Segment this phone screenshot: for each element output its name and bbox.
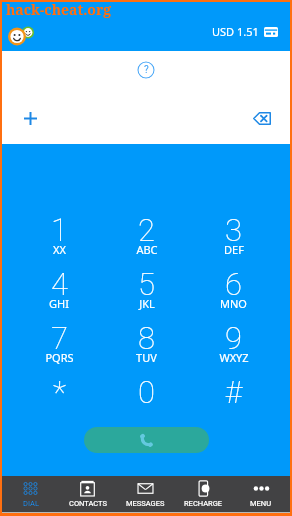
staticText: 2 bbox=[138, 212, 155, 248]
staticText: hack-cheat.org bbox=[6, 0, 112, 19]
staticText: 7 bbox=[51, 320, 68, 356]
button[interactable]: Add contact bbox=[17, 105, 43, 131]
button[interactable]: 3 bbox=[190, 212, 277, 264]
staticText: MENU bbox=[250, 499, 272, 508]
staticText: DIAL bbox=[23, 499, 39, 508]
staticText: MESSAGES bbox=[126, 499, 165, 508]
button[interactable]: DIAL bbox=[2, 476, 59, 512]
staticText: * bbox=[53, 374, 66, 410]
button[interactable]: # bbox=[190, 374, 277, 426]
staticText: DEF bbox=[224, 242, 244, 257]
button[interactable]: MENU bbox=[232, 476, 290, 512]
staticText: XX bbox=[53, 242, 66, 257]
staticText: CONTACTS bbox=[69, 499, 107, 508]
staticText: 0 bbox=[138, 374, 155, 410]
staticText: GHI bbox=[49, 296, 69, 311]
staticText: TUV bbox=[136, 350, 157, 365]
button[interactable]: Help bbox=[137, 61, 155, 79]
button[interactable]: 2 bbox=[103, 212, 190, 264]
button[interactable]: 6 bbox=[190, 266, 277, 318]
staticText: WXYZ bbox=[219, 350, 249, 365]
staticText: 6 bbox=[225, 266, 242, 302]
button[interactable]: Contacts avatars bbox=[4, 25, 42, 49]
staticText: # bbox=[225, 374, 242, 410]
staticText: RECHARGE bbox=[184, 499, 223, 508]
staticText: USD 1.51 bbox=[212, 24, 259, 39]
staticText: JKL bbox=[139, 296, 155, 311]
staticText: 3 bbox=[225, 212, 242, 248]
button[interactable]: RECHARGE bbox=[174, 476, 232, 512]
button[interactable]: 8 bbox=[103, 320, 190, 372]
button[interactable]: 4 bbox=[15, 266, 103, 318]
staticText: MNO bbox=[220, 296, 247, 311]
button[interactable]: MESSAGES bbox=[116, 476, 174, 512]
button[interactable]: 7 bbox=[15, 320, 103, 372]
button[interactable]: Backspace bbox=[248, 104, 276, 132]
staticText: ABC bbox=[136, 242, 158, 257]
staticText: ? bbox=[144, 64, 149, 76]
button[interactable]: 1 bbox=[15, 212, 103, 264]
button[interactable]: Call bbox=[84, 427, 209, 453]
staticText: 9 bbox=[225, 320, 242, 356]
staticText: 5 bbox=[138, 266, 155, 302]
button[interactable]: CONTACTS bbox=[59, 476, 116, 512]
button[interactable]: USD 1.51 bbox=[212, 24, 278, 39]
button[interactable]: * bbox=[15, 374, 103, 426]
staticText: 8 bbox=[138, 320, 155, 356]
button[interactable]: 9 bbox=[190, 320, 277, 372]
staticText: PQRS bbox=[45, 350, 74, 365]
staticText: 4 bbox=[51, 266, 68, 302]
staticText: 1 bbox=[51, 212, 68, 248]
button[interactable]: 5 bbox=[103, 266, 190, 318]
button[interactable]: 0 bbox=[103, 374, 190, 426]
